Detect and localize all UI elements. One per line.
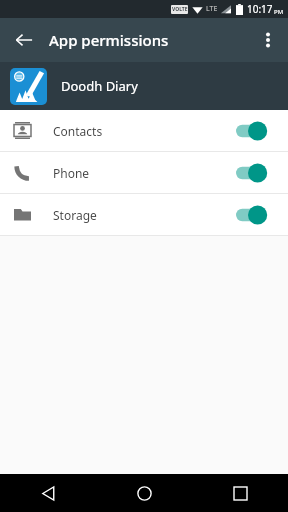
staticText: PM xyxy=(274,8,284,16)
staticText: App permissions xyxy=(49,30,169,50)
button[interactable]: More options xyxy=(252,24,284,56)
staticText: Doodh Diary xyxy=(61,77,138,95)
button[interactable]: Phone xyxy=(0,152,288,193)
button[interactable]: Back xyxy=(8,24,40,56)
button[interactable]: Toggle permission xyxy=(236,161,276,185)
button[interactable]: Home xyxy=(96,474,192,512)
button[interactable]: Back xyxy=(0,474,96,512)
staticText: Phone xyxy=(53,165,236,181)
button[interactable]: Contacts xyxy=(0,110,288,151)
button[interactable]: Toggle permission xyxy=(236,119,276,143)
staticText: 10:17 xyxy=(247,2,273,16)
staticText: VOLTE xyxy=(172,6,188,13)
button[interactable]: Storage xyxy=(0,194,288,235)
staticText: LTE xyxy=(206,4,218,14)
button[interactable]: Recent apps xyxy=(192,474,288,512)
button[interactable]: Toggle permission xyxy=(236,203,276,227)
button[interactable]: Doodh Diary xyxy=(0,62,288,110)
staticText: Storage xyxy=(53,207,236,223)
staticText: Contacts xyxy=(53,123,236,139)
